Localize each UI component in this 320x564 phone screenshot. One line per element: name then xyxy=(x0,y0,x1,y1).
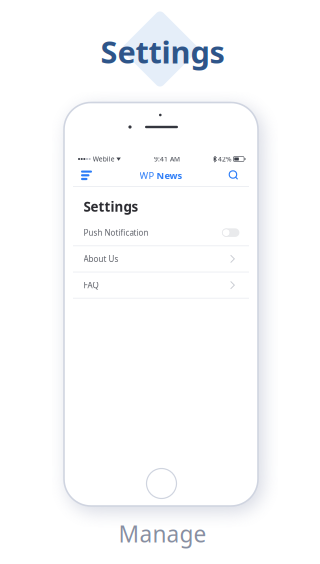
staticText: WP xyxy=(139,169,154,181)
staticText: FAQ xyxy=(83,280,98,290)
staticText: Settings xyxy=(83,198,138,215)
button[interactable]: About Us xyxy=(69,246,253,272)
staticText: Push Notification xyxy=(83,227,148,238)
staticText: Settings xyxy=(100,31,224,72)
button[interactable]: Search xyxy=(211,166,253,184)
button[interactable]: Push Notification xyxy=(69,220,253,246)
staticText: News xyxy=(156,169,182,181)
staticText: Webile xyxy=(93,155,115,163)
button[interactable]: Menu xyxy=(69,166,109,184)
staticText: 42% xyxy=(218,155,232,163)
button[interactable]: FAQ xyxy=(69,272,253,299)
staticText: Manage xyxy=(118,518,206,549)
staticText: 9:41 AM xyxy=(154,155,180,163)
staticText: About Us xyxy=(83,254,118,264)
